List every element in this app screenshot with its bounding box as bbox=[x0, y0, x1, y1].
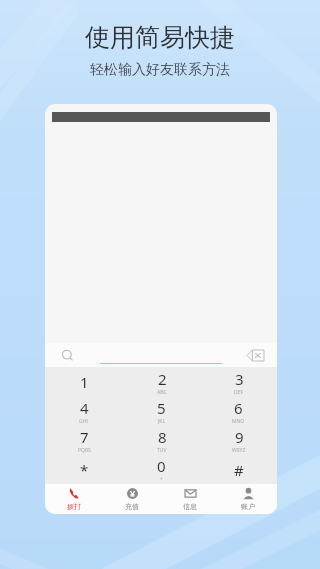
button[interactable]: Search contacts bbox=[57, 345, 77, 365]
staticText: JKL bbox=[158, 418, 166, 425]
button[interactable]: 6 bbox=[200, 397, 277, 426]
button[interactable]: 信息 bbox=[161, 484, 219, 514]
staticText: 充值 bbox=[125, 502, 139, 511]
button[interactable]: 8 bbox=[123, 426, 200, 455]
staticText: ABC bbox=[157, 389, 167, 396]
staticText: 1 bbox=[80, 372, 89, 392]
button[interactable]: * bbox=[45, 455, 123, 484]
button[interactable]: 1 bbox=[45, 367, 123, 397]
staticText: 8 bbox=[158, 427, 167, 447]
button[interactable]: 9 bbox=[200, 426, 277, 455]
staticText: 信息 bbox=[183, 502, 197, 511]
staticText: MNO bbox=[232, 418, 245, 425]
button[interactable]: 0 bbox=[123, 455, 200, 484]
staticText: GHI bbox=[79, 418, 89, 425]
staticText: + bbox=[160, 476, 163, 483]
staticText: 2 bbox=[158, 369, 167, 389]
staticText: 拨打 bbox=[67, 502, 81, 511]
button[interactable]: 拨打 bbox=[45, 484, 103, 514]
staticText: 5 bbox=[157, 398, 166, 418]
staticText: 7 bbox=[80, 427, 89, 447]
button[interactable]: Backspace bbox=[243, 346, 267, 364]
staticText: TUV bbox=[157, 447, 167, 454]
staticText: 3 bbox=[235, 369, 244, 389]
button[interactable]: 3 bbox=[200, 367, 277, 397]
staticText: 使用简易快捷 bbox=[85, 22, 235, 53]
button[interactable]: 2 bbox=[123, 367, 200, 397]
staticText: 9 bbox=[235, 427, 244, 447]
button[interactable]: 5 bbox=[123, 397, 200, 426]
button[interactable]: 账户 bbox=[219, 484, 277, 514]
button[interactable]: 7 bbox=[45, 426, 123, 455]
staticText: 账户 bbox=[241, 502, 255, 511]
staticText: # bbox=[234, 460, 244, 480]
staticText: 0 bbox=[157, 456, 166, 476]
button[interactable]: # bbox=[200, 455, 277, 484]
staticText: DEF bbox=[234, 389, 244, 396]
staticText: 轻松输入好友联系方法 bbox=[90, 61, 230, 79]
button[interactable]: 4 bbox=[45, 397, 123, 426]
staticText: 6 bbox=[234, 398, 243, 418]
staticText: WXYZ bbox=[232, 447, 246, 454]
button[interactable]: 充值 bbox=[103, 484, 161, 514]
staticText: * bbox=[80, 460, 89, 480]
staticText: 4 bbox=[80, 398, 89, 418]
staticText: PQRS bbox=[78, 447, 91, 454]
